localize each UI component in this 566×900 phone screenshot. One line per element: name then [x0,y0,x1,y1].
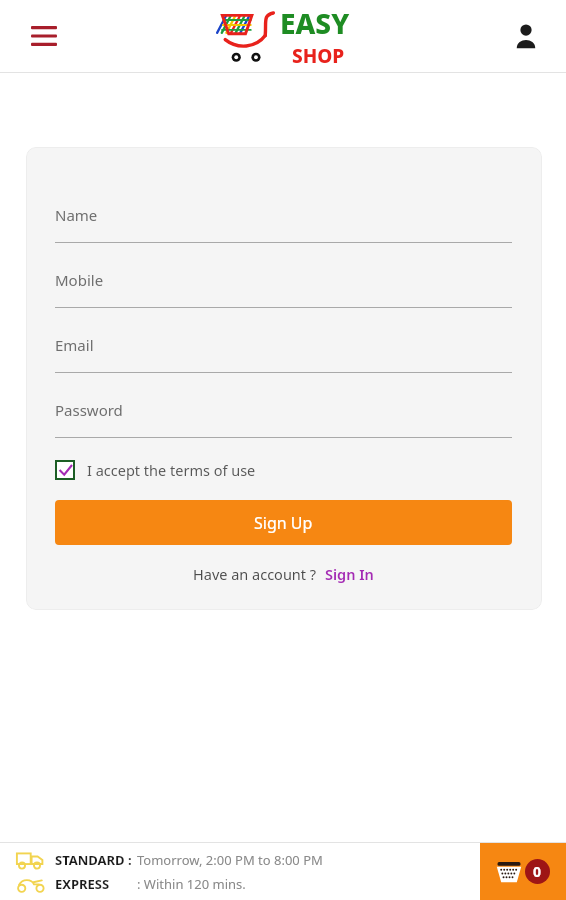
button[interactable]: Sign In [325,564,374,584]
staticText: Tomorrow, 2:00 PM to 8:00 PM [137,851,323,869]
staticText: 0 [533,862,542,881]
button[interactable]: Sign Up [55,500,512,545]
staticText: EXPRESS [55,875,110,893]
button[interactable]: I accept the terms of use [55,460,256,480]
button[interactable]: Mobile [55,270,512,308]
staticText: SHOP [292,43,345,69]
staticText: EASY [280,4,350,42]
staticText: STANDARD : [55,851,132,869]
button[interactable]: Account [504,14,548,58]
staticText: : Within 120 mins. [137,875,246,893]
staticText: Name [55,205,98,225]
staticText: Sign Up [254,512,313,534]
staticText: I accept the terms of use [87,460,256,480]
button[interactable]: Email [55,335,512,373]
button[interactable]: Name [55,205,512,243]
button[interactable]: Password [55,400,512,438]
button[interactable]: Menu [22,14,66,58]
staticText: Sign In [325,564,374,584]
button[interactable]: Cart [480,843,566,900]
staticText: Have an account ? [193,564,317,584]
staticText: Email [55,335,94,355]
staticText: Mobile [55,270,104,290]
staticText: Password [55,400,123,420]
